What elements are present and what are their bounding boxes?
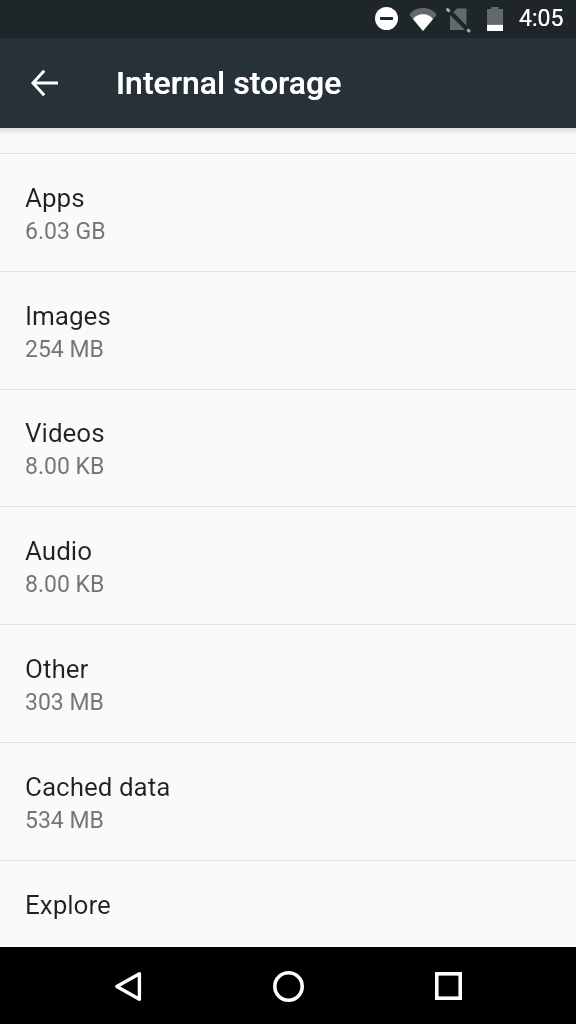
button[interactable]: Images	[0, 272, 576, 389]
staticText: 8.00 KB	[25, 571, 105, 598]
button[interactable]: Back	[98, 956, 158, 1016]
staticText: Internal storage	[116, 64, 342, 102]
button[interactable]: Navigate up	[21, 59, 69, 107]
staticText: Audio	[25, 536, 92, 566]
staticText: 534 MB	[25, 807, 104, 834]
button[interactable]: Other	[0, 625, 576, 742]
button[interactable]: Audio	[0, 507, 576, 624]
staticText: 303 MB	[25, 689, 104, 716]
staticText: 6.03 GB	[25, 218, 106, 245]
button[interactable]: Cached data	[0, 743, 576, 860]
staticText: 254 MB	[25, 336, 104, 363]
button[interactable]: Recent apps	[418, 956, 478, 1016]
button[interactable]: Videos	[0, 390, 576, 506]
staticText: Other	[25, 654, 89, 684]
staticText: Apps	[25, 183, 85, 213]
button[interactable]: Home	[258, 956, 318, 1016]
staticText: Videos	[25, 418, 105, 448]
staticText: Images	[25, 301, 111, 331]
button[interactable]: Explore	[0, 861, 576, 947]
staticText: Cached data	[25, 772, 171, 802]
staticText: 4:05	[519, 5, 564, 32]
button[interactable]: Apps	[0, 154, 576, 271]
staticText: Explore	[25, 890, 111, 920]
staticText: 8.00 KB	[25, 453, 105, 480]
